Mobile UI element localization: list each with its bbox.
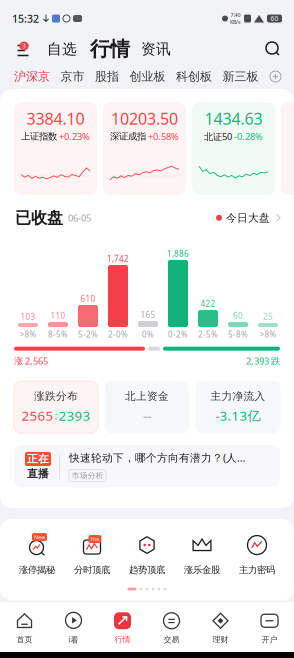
staticText: 直播 bbox=[27, 467, 49, 480]
staticText: +0.58% bbox=[148, 130, 179, 143]
staticText: 25 bbox=[263, 311, 273, 322]
staticText: 06-05 bbox=[68, 212, 91, 224]
staticText: 涨停揭秘 bbox=[19, 564, 55, 575]
button[interactable]: 资讯 bbox=[136, 40, 176, 58]
staticText: 涨跌分布 bbox=[34, 390, 78, 403]
button[interactable]: 新三板 bbox=[222, 69, 258, 84]
staticText: 正在 bbox=[27, 452, 49, 465]
staticText: 市场分析 bbox=[71, 471, 103, 480]
button[interactable]: Menu bbox=[13, 40, 33, 58]
button[interactable]: More categories bbox=[269, 70, 282, 83]
button[interactable]: 1434.63 bbox=[192, 102, 275, 195]
staticText: 103 bbox=[20, 311, 35, 322]
button[interactable]: New bbox=[9, 533, 64, 575]
button[interactable]: 主力密码 bbox=[229, 533, 284, 575]
button[interactable]: 股指 bbox=[95, 69, 119, 84]
staticText: 1,742 bbox=[107, 253, 129, 264]
staticText: 610 bbox=[80, 293, 95, 304]
staticText: 北上资金 bbox=[125, 390, 169, 403]
button[interactable]: 开户 bbox=[245, 612, 294, 645]
button[interactable]: Hot bbox=[64, 533, 119, 575]
button[interactable]: 趋势顶底 bbox=[119, 533, 174, 575]
staticText: 110 bbox=[50, 310, 65, 321]
staticText: -3.13亿 bbox=[215, 407, 260, 424]
staticText: 创业板 bbox=[129, 69, 165, 84]
staticText: 2565 bbox=[21, 407, 53, 424]
staticText: 2393 bbox=[58, 407, 90, 424]
button[interactable]: 行情 bbox=[84, 37, 136, 61]
staticText: +0.23% bbox=[59, 130, 90, 143]
staticText: 行情 bbox=[90, 37, 130, 61]
staticText: 2-0% bbox=[108, 329, 128, 340]
staticText: 15:32 bbox=[12, 11, 39, 26]
staticText: >8% bbox=[259, 329, 276, 340]
staticText: 上证指数 bbox=[21, 131, 57, 142]
staticText: 行情 bbox=[114, 635, 130, 645]
button[interactable]: 自选 bbox=[40, 40, 84, 58]
staticText: 资讯 bbox=[141, 40, 171, 58]
staticText: 2,393 跌 bbox=[246, 355, 280, 367]
button[interactable]: 行情 bbox=[98, 612, 147, 645]
staticText: 主力净流入 bbox=[210, 390, 265, 403]
staticText: 涨 2,565 bbox=[14, 355, 48, 367]
staticText: 5-8% bbox=[228, 329, 248, 340]
button[interactable]: 交易 bbox=[147, 612, 196, 645]
button[interactable]: 正在 bbox=[14, 445, 280, 487]
staticText: 3 bbox=[22, 42, 26, 50]
staticText: 7.40 bbox=[230, 11, 240, 18]
button[interactable]: 10203.50 bbox=[103, 102, 186, 195]
staticText: 0-2% bbox=[168, 329, 188, 340]
staticText: 涨乐金股 bbox=[184, 564, 220, 575]
staticText: 165 bbox=[140, 309, 155, 320]
button[interactable]: 主力净流入 bbox=[196, 381, 280, 433]
staticText: 新三板 bbox=[222, 69, 258, 84]
button[interactable]: 3384.10 bbox=[14, 102, 97, 195]
staticText: 理财 bbox=[212, 635, 228, 645]
button[interactable]: 科创板 bbox=[176, 69, 212, 84]
button[interactable]: 北上资金 bbox=[105, 381, 189, 433]
staticText: 10203.50 bbox=[111, 108, 178, 129]
staticText: KB/s bbox=[230, 18, 241, 26]
staticText: 快速轮动下，哪个方向有潜力？(人… bbox=[69, 450, 245, 465]
staticText: 自选 bbox=[47, 40, 77, 58]
staticText: 沪深京 bbox=[14, 69, 50, 84]
staticText: : bbox=[54, 408, 57, 423]
staticText: 开户 bbox=[261, 635, 277, 645]
button[interactable]: 涨跌分布 bbox=[14, 381, 98, 433]
staticText: 60 bbox=[233, 310, 243, 321]
staticText: -0.28% bbox=[234, 130, 263, 143]
staticText: 交易 bbox=[163, 635, 179, 645]
staticText: 8-5% bbox=[48, 329, 68, 340]
button[interactable]: 创业板 bbox=[129, 69, 165, 84]
staticText: 5-2% bbox=[78, 329, 98, 340]
staticText: 今日大盘 bbox=[226, 211, 270, 224]
staticText: 已收盘 bbox=[15, 208, 63, 228]
button[interactable]: Search bbox=[264, 41, 282, 57]
staticText: New bbox=[34, 533, 45, 541]
staticText: 2-5% bbox=[198, 329, 218, 340]
button[interactable]: i看 bbox=[49, 611, 98, 645]
button[interactable]: 京市 bbox=[60, 69, 84, 84]
staticText: 422 bbox=[200, 298, 215, 309]
staticText: >8% bbox=[19, 329, 36, 340]
staticText: i看 bbox=[68, 634, 78, 645]
staticText: 1434.63 bbox=[204, 108, 262, 129]
staticText: 60 bbox=[270, 14, 278, 23]
staticText: -- bbox=[143, 407, 151, 424]
staticText: 深证成指 bbox=[110, 131, 146, 142]
staticText: 分时顶底 bbox=[74, 564, 110, 575]
button[interactable]: 首页 bbox=[0, 612, 49, 645]
staticText: 主力密码 bbox=[239, 564, 275, 575]
staticText: 京市 bbox=[60, 69, 84, 84]
staticText: 北证50 bbox=[204, 130, 232, 143]
button[interactable]: 今日大盘 bbox=[216, 211, 282, 224]
button[interactable]: 涨乐金股 bbox=[174, 533, 229, 575]
button[interactable]: 理财 bbox=[196, 612, 245, 645]
staticText: Hot bbox=[90, 535, 99, 543]
staticText: 0% bbox=[142, 329, 154, 340]
staticText: 3384.10 bbox=[26, 108, 84, 129]
staticText: 首页 bbox=[16, 635, 32, 645]
staticText: 趋势顶底 bbox=[129, 564, 165, 575]
button[interactable]: 沪深京 bbox=[14, 69, 50, 84]
staticText: 1,886 bbox=[167, 248, 189, 259]
